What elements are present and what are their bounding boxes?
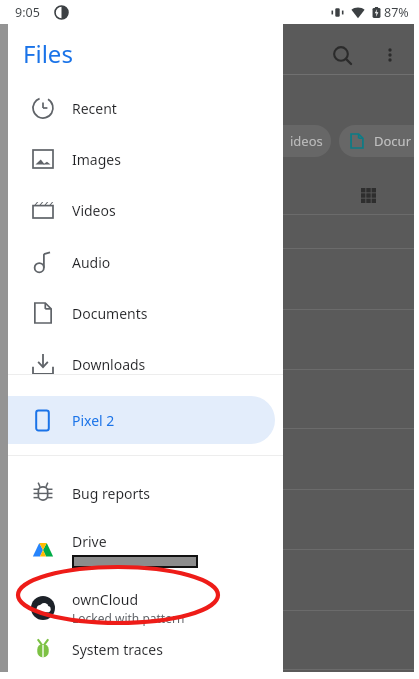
button[interactable]: System traces xyxy=(8,625,283,673)
staticText: System traces xyxy=(72,640,163,659)
staticText: Drive xyxy=(72,532,107,551)
staticText: Docur xyxy=(374,132,411,150)
staticText: ownCloud xyxy=(72,590,139,609)
button[interactable]: Downloads xyxy=(8,340,283,388)
button[interactable]: Audio xyxy=(8,238,283,286)
staticText: Documents xyxy=(72,304,148,323)
button[interactable]: ownCloud xyxy=(8,580,283,636)
button[interactable]: Images xyxy=(8,135,283,183)
button[interactable]: Search xyxy=(325,38,359,72)
button[interactable]: Videos xyxy=(8,186,283,234)
staticText: Audio xyxy=(72,253,111,272)
button[interactable]: Drive xyxy=(8,521,283,579)
staticText: Pixel 2 xyxy=(72,411,115,430)
button[interactable]: More options xyxy=(373,38,407,72)
staticText: ideos xyxy=(290,132,323,150)
staticText: Videos xyxy=(72,201,116,220)
button[interactable]: Recent xyxy=(8,84,283,132)
button[interactable]: ideos xyxy=(237,125,331,157)
staticText: 9:05 xyxy=(15,4,40,21)
button[interactable]: Grid view xyxy=(355,182,381,208)
button[interactable]: Documents xyxy=(8,289,283,337)
staticText: Files xyxy=(23,37,73,70)
staticText: Recent xyxy=(72,99,117,118)
staticText: 87% xyxy=(384,4,409,21)
staticText: Images xyxy=(72,150,121,169)
staticText: Locked with pattern xyxy=(72,610,185,626)
button[interactable]: Docur xyxy=(339,125,419,157)
staticText: Bug reports xyxy=(72,484,151,503)
button[interactable]: Bug reports xyxy=(8,469,283,517)
button[interactable]: Pixel 2 xyxy=(8,396,275,444)
staticText: Downloads xyxy=(72,355,146,374)
